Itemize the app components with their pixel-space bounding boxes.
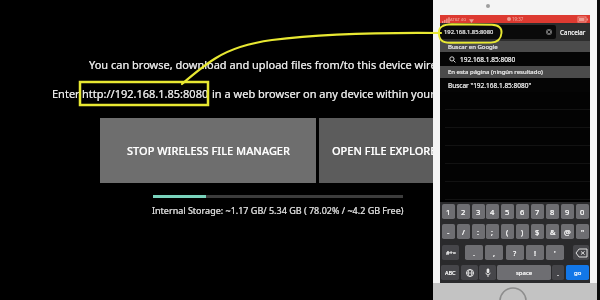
button[interactable]: Voice input <box>479 265 496 280</box>
staticText: 5 <box>505 207 510 217</box>
button[interactable]: ; <box>486 224 499 239</box>
button[interactable]: space <box>497 265 551 280</box>
button[interactable]: go <box>566 265 589 280</box>
staticText: 7 <box>535 207 540 217</box>
staticText: in a web browser on any device within yo… <box>212 86 481 101</box>
staticText: Internal Storage: ~1.17 GB/ 5.34 GB ( 78… <box>152 204 404 216</box>
staticText: 19:37 <box>512 16 524 22</box>
staticText: ( <box>506 227 509 237</box>
button[interactable]: 2 <box>457 204 470 219</box>
button[interactable]: 192.168.1.85:8080 <box>440 52 590 66</box>
staticText: @ <box>564 227 571 237</box>
button[interactable]: : <box>472 224 485 239</box>
button[interactable]: OPEN FILE EXPLORER <box>319 118 479 183</box>
staticText: . <box>473 248 476 258</box>
button[interactable]: 9 <box>561 204 574 219</box>
staticText: Enter <box>52 86 83 101</box>
staticText: . <box>557 268 560 278</box>
staticText: 6 <box>520 207 525 217</box>
button[interactable]: 1 <box>442 204 455 219</box>
button[interactable]: 4 <box>486 204 499 219</box>
staticText: ! <box>534 248 537 258</box>
staticText: Buscar en Google <box>448 43 498 51</box>
button[interactable]: - <box>442 224 455 239</box>
button[interactable]: #+= <box>442 245 459 260</box>
button[interactable]: Buscar "192.168.1.85:8080" <box>440 78 590 92</box>
staticText: " <box>581 227 585 237</box>
staticText: STOP WIRELESS FILE MANAGER <box>127 143 290 158</box>
staticText: / <box>462 227 465 237</box>
button[interactable]: ABC <box>441 265 459 280</box>
button[interactable]: ' <box>546 245 564 260</box>
button[interactable]: @ <box>561 224 574 239</box>
button[interactable]: . <box>552 265 564 280</box>
staticText: 3 <box>476 207 481 217</box>
staticText: 8 <box>550 207 555 217</box>
staticText: Buscar "192.168.1.85:8080" <box>448 81 532 90</box>
button[interactable]: ) <box>516 224 529 239</box>
button[interactable]: Delete <box>573 245 589 260</box>
staticText: You can browse, download and upload file… <box>89 57 465 72</box>
staticText: go <box>574 269 582 277</box>
staticText: $ <box>535 227 540 237</box>
staticText: ; <box>491 227 494 237</box>
staticText: #+= <box>446 249 456 256</box>
staticText: 192.168.1.85:8080 <box>444 28 494 36</box>
button[interactable]: ( <box>501 224 514 239</box>
staticText: 0 <box>580 207 585 217</box>
staticText: 192.168.1.85:8080 <box>460 55 516 64</box>
button[interactable]: . <box>465 245 483 260</box>
staticText: & <box>550 227 556 237</box>
button[interactable]: , <box>485 245 503 260</box>
staticText: , <box>493 248 496 258</box>
staticText: En esta página (ningún resultado) <box>448 68 543 76</box>
button[interactable]: $ <box>531 224 544 239</box>
button[interactable]: Change keyboard <box>461 265 478 280</box>
button[interactable]: STOP WIRELESS FILE MANAGER <box>100 118 316 183</box>
staticText: AT&T 4G <box>450 17 467 23</box>
button[interactable]: ? <box>506 245 524 260</box>
staticText: : <box>477 227 480 237</box>
button[interactable]: 8 <box>546 204 559 219</box>
button[interactable]: 192.168.1.85:8080 <box>440 25 556 39</box>
staticText: ABC <box>445 269 456 276</box>
staticText: 2 <box>461 207 466 217</box>
button[interactable]: / <box>457 224 470 239</box>
button[interactable]: 7 <box>531 204 544 219</box>
staticText: Cancelar <box>560 28 586 36</box>
button[interactable]: " <box>576 224 589 239</box>
staticText: http://192.168.1.85:8080 <box>82 86 209 101</box>
button[interactable]: 0 <box>576 204 589 219</box>
staticText: OPEN FILE EXPLORER <box>332 143 444 158</box>
staticText: ? <box>513 248 517 258</box>
staticText: 9 <box>565 207 570 217</box>
staticText: ) <box>521 227 524 237</box>
button[interactable]: 5 <box>501 204 514 219</box>
staticText: ' <box>554 248 556 258</box>
staticText: 4 <box>490 207 495 217</box>
button[interactable]: ! <box>526 245 544 260</box>
button[interactable]: Cancelar <box>556 23 590 41</box>
staticText: space <box>516 269 533 277</box>
button[interactable]: 3 <box>472 204 485 219</box>
other: Clear text <box>546 29 552 35</box>
button[interactable]: 6 <box>516 204 529 219</box>
button[interactable]: & <box>546 224 559 239</box>
staticText: 1 <box>446 207 451 217</box>
staticText: - <box>447 227 450 237</box>
